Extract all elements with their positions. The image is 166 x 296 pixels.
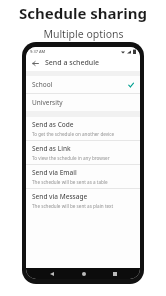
staticText: Send via Message [32,192,88,201]
button[interactable]: Back [46,268,57,279]
staticText: Multiple options [43,27,124,41]
staticText: Send via Email [32,168,77,177]
button[interactable]: Send via Email [26,165,140,188]
button[interactable]: University [26,94,140,111]
staticText: To get the schedule on another device [32,131,115,137]
staticText: Send as Code [32,120,74,129]
staticText: School [32,80,53,89]
staticText: Schedule sharing [19,3,147,23]
button[interactable]: Send as Link [26,141,140,164]
button[interactable]: School [26,76,140,93]
staticText: The schedule will be sent as plain text [32,203,114,209]
staticText: To view the schedule in any browser [32,155,110,161]
staticText: Send a schedule [45,58,100,68]
staticText: Send as Link [32,144,71,153]
button[interactable]: Back [30,58,40,68]
staticText: The schedule will be sent as a table [32,179,108,185]
button[interactable]: Send via Message [26,189,140,212]
button[interactable]: Recents [109,268,120,279]
button[interactable]: Home [78,268,89,279]
staticText: University [32,98,63,107]
button[interactable]: Send as Code [26,117,140,140]
staticText: 9:37 AM [30,49,46,54]
